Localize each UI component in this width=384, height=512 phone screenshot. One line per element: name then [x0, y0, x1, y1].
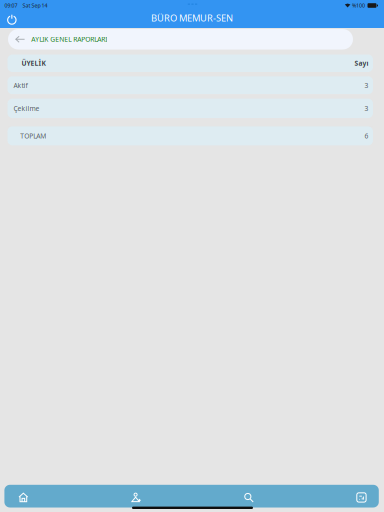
staticText: Sayı	[354, 59, 368, 68]
staticText: BÜRO MEMUR-SEN	[151, 12, 233, 24]
staticText: TOPLAM	[20, 131, 46, 140]
staticText: 3	[364, 81, 368, 90]
staticText: Sat Sep 14	[22, 2, 47, 9]
staticText: ÜYELİK	[21, 59, 45, 68]
staticText: AYLIK GENEL RAPORLARI	[31, 35, 107, 44]
button[interactable]: Ara	[242, 488, 256, 505]
staticText: 3	[364, 104, 368, 113]
button[interactable]: Raporlar	[354, 488, 369, 505]
staticText: Aktif	[13, 81, 27, 90]
staticText: 6	[364, 131, 368, 140]
button[interactable]: AYLIK GENEL RAPORLARI	[8, 29, 353, 49]
button[interactable]: Çıkış	[0, 11, 24, 28]
button[interactable]: Ana Sayfa	[16, 488, 30, 505]
staticText: %100	[352, 2, 365, 9]
staticText: 09:07	[4, 2, 17, 9]
staticText: Çekilme	[13, 104, 39, 113]
button[interactable]: Üye Kayıt	[129, 488, 143, 505]
